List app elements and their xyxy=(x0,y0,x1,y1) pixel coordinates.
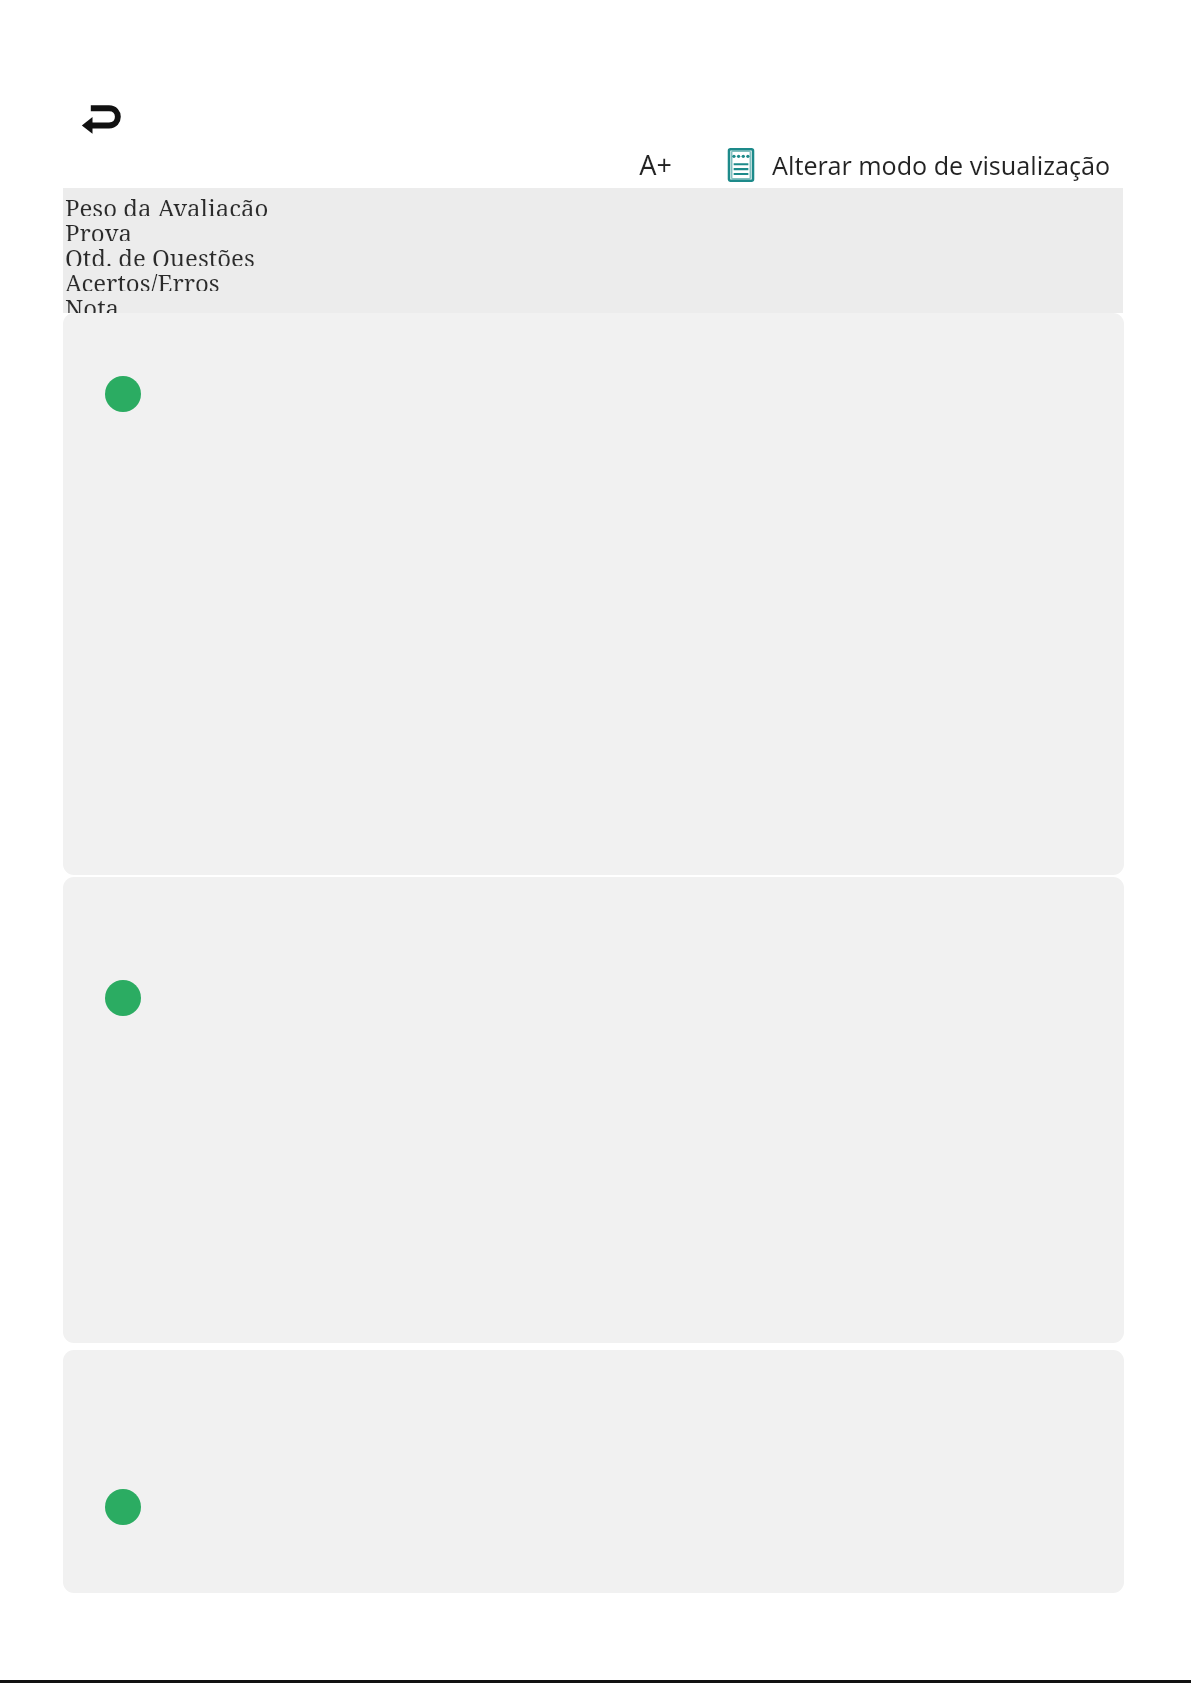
button[interactable] xyxy=(63,877,1124,1343)
button[interactable] xyxy=(63,1350,1124,1593)
staticText: Prova xyxy=(65,216,133,241)
button[interactable]: Voltar xyxy=(74,92,130,146)
button[interactable] xyxy=(63,313,1124,875)
staticText: Peso da Avaliação xyxy=(65,191,269,216)
staticText: Acertos/Erros xyxy=(65,266,220,291)
button[interactable]: Alterar modo de visualização xyxy=(706,140,1131,189)
button[interactable]: A+ xyxy=(610,140,701,189)
staticText: A+ xyxy=(639,146,672,183)
staticText: Alterar modo de visualização xyxy=(772,148,1111,182)
staticText: Nota xyxy=(65,291,120,313)
staticText: Qtd. de Questões xyxy=(65,241,255,266)
